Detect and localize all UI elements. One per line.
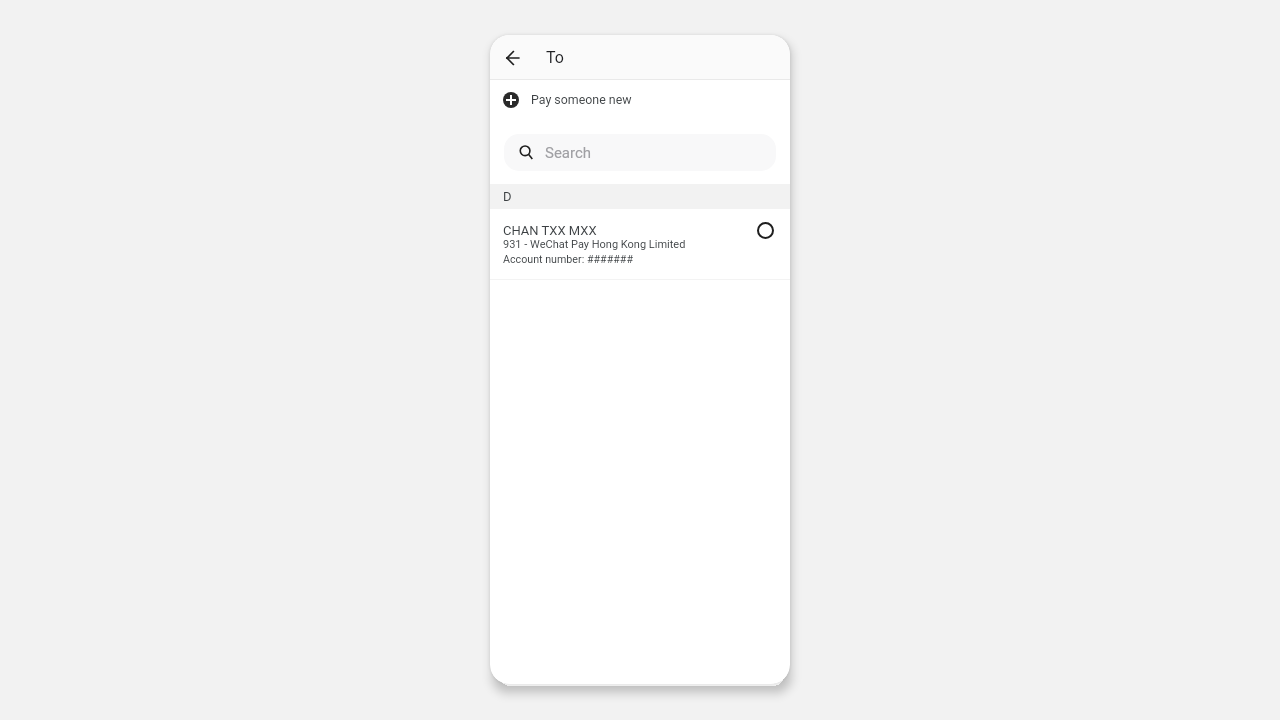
staticText: To (546, 48, 564, 67)
button[interactable]: CHAN TXX MXX (490, 209, 790, 280)
staticText: Search (545, 144, 592, 162)
staticText: Account number: ####### (503, 253, 633, 266)
staticText: CHAN TXX MXX (503, 223, 597, 238)
staticText: Pay someone new (531, 92, 632, 107)
button[interactable]: Search (504, 134, 776, 171)
staticText: D (503, 189, 512, 204)
button[interactable]: Pay someone new (490, 80, 790, 123)
staticText: 931 - WeChat Pay Hong Kong Limited (503, 238, 686, 251)
button[interactable]: Select recipient (752, 217, 778, 243)
button[interactable]: Back (499, 44, 526, 71)
